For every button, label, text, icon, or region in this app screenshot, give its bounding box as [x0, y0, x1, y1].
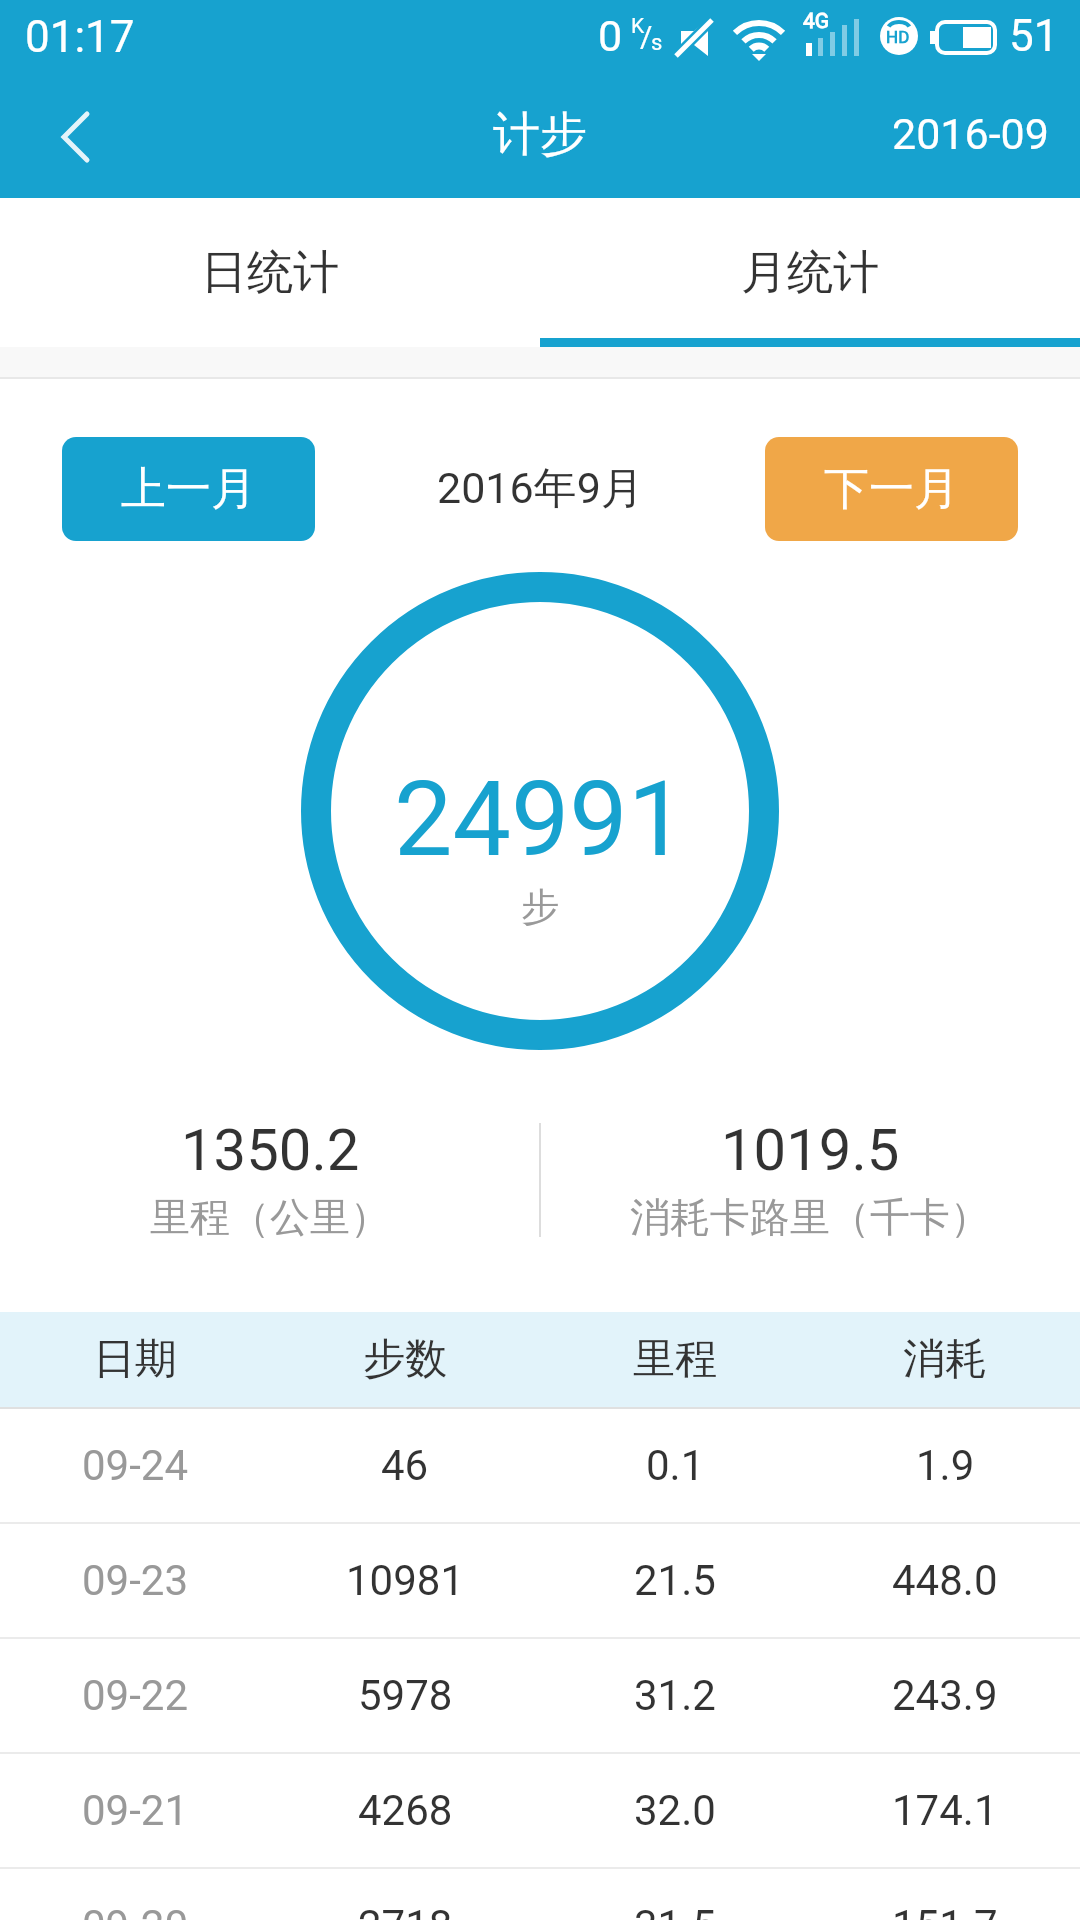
button[interactable]: 09-21 [0, 1754, 1080, 1867]
staticText: 10981 [346, 1556, 465, 1605]
staticText: 0.1 [646, 1441, 705, 1490]
button[interactable]: 09-22 [0, 1639, 1080, 1752]
staticText: 448.0 [892, 1556, 998, 1605]
staticText: 1.9 [916, 1441, 975, 1490]
staticText: / [640, 19, 653, 54]
staticText: 21.5 [634, 1556, 716, 1605]
staticText: 步 [521, 883, 559, 931]
button[interactable]: 09-20 [0, 1869, 1080, 1920]
staticText: 243.9 [892, 1671, 998, 1720]
button[interactable]: 月统计 [540, 198, 1080, 347]
button[interactable]: 上一月 [62, 437, 315, 541]
button[interactable]: 日统计 [0, 198, 540, 347]
staticText: K [631, 14, 645, 39]
staticText: s [651, 30, 663, 56]
staticText: 消耗卡路里（千卡） [630, 1192, 990, 1242]
staticText: 日期 [93, 1333, 177, 1386]
staticText: 2016年9月 [437, 462, 644, 516]
staticText: 消耗 [903, 1333, 987, 1386]
staticText: 09-20 [82, 1901, 189, 1920]
staticText: 计步 [493, 105, 587, 164]
staticText: 24991 [394, 759, 687, 881]
staticText: 下一月 [824, 461, 959, 518]
staticText: 里程 [633, 1333, 717, 1386]
staticText: 步数 [363, 1333, 447, 1386]
staticText: 上一月 [121, 461, 256, 518]
staticText: 0 [598, 11, 623, 61]
staticText: 里程（公里） [150, 1192, 390, 1242]
staticText: 日统计 [201, 244, 339, 302]
staticText: 月统计 [741, 244, 879, 302]
staticText: 1019.5 [721, 1116, 900, 1184]
staticText: 2016-09 [892, 109, 1049, 159]
staticText: 5978 [358, 1671, 453, 1720]
button[interactable]: 09-23 [0, 1524, 1080, 1637]
staticText: 2718 [358, 1901, 453, 1920]
staticText: 51 [1009, 10, 1059, 62]
staticText: HD [886, 27, 910, 47]
staticText: 09-22 [82, 1671, 189, 1720]
staticText: 31.2 [634, 1671, 716, 1720]
staticText: 32.0 [634, 1786, 716, 1835]
staticText: 09-23 [82, 1556, 189, 1605]
staticText: 151.7 [892, 1901, 998, 1920]
staticText: 4268 [358, 1786, 453, 1835]
staticText: 31.5 [634, 1901, 716, 1920]
staticText: 01:17 [25, 11, 135, 63]
staticText: 46 [381, 1441, 429, 1490]
staticText: 4G [803, 9, 830, 34]
staticText: 1350.2 [181, 1116, 360, 1184]
button[interactable]: 下一月 [765, 437, 1018, 541]
staticText: 174.1 [892, 1786, 998, 1835]
button[interactable] [30, 90, 125, 185]
button[interactable]: 09-24 [0, 1409, 1080, 1522]
staticText: 09-24 [82, 1441, 189, 1490]
staticText: 09-21 [82, 1786, 189, 1835]
